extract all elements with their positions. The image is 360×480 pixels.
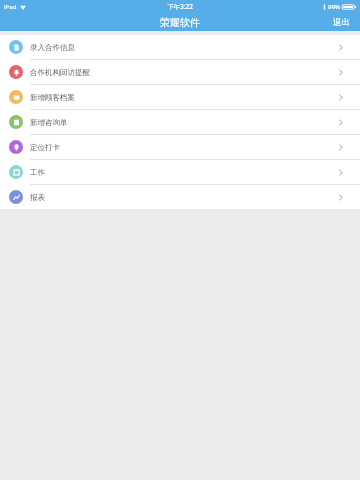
staticText: 荣耀软件 <box>160 16 200 29</box>
button[interactable]: 定位打卡 <box>0 135 360 159</box>
staticText: 定位打卡 <box>30 143 60 152</box>
staticText: 新增咨询单 <box>30 118 68 127</box>
staticText: 合作机构回访提醒 <box>30 68 90 77</box>
button[interactable]: 新增咨询单 <box>0 110 360 134</box>
button[interactable]: 新增顾客档案 <box>0 85 360 109</box>
button[interactable]: 合作机构回访提醒 <box>0 60 360 84</box>
button[interactable]: 工作 <box>0 160 360 184</box>
other: Open 录入合作信息 <box>338 43 344 52</box>
staticText: 退出 <box>333 17 350 28</box>
button[interactable]: 录入合作信息 <box>0 35 360 59</box>
staticText: 录入合作信息 <box>30 43 75 52</box>
staticText: 报表 <box>30 193 45 202</box>
staticText: 99% <box>328 3 340 11</box>
other: Open 定位打卡 <box>338 143 344 152</box>
staticText: 工作 <box>30 168 45 177</box>
button[interactable]: 报表 <box>0 185 360 209</box>
button[interactable]: 退出 <box>323 15 360 30</box>
staticText: iPad <box>4 3 17 11</box>
other: Open 新增咨询单 <box>338 118 344 127</box>
other: Open 报表 <box>338 193 344 202</box>
staticText: 下午3:22 <box>167 2 193 11</box>
other: Open 工作 <box>338 168 344 177</box>
other: Open 新增顾客档案 <box>338 93 344 102</box>
staticText: 新增顾客档案 <box>30 93 75 102</box>
other: Open 合作机构回访提醒 <box>338 68 344 77</box>
